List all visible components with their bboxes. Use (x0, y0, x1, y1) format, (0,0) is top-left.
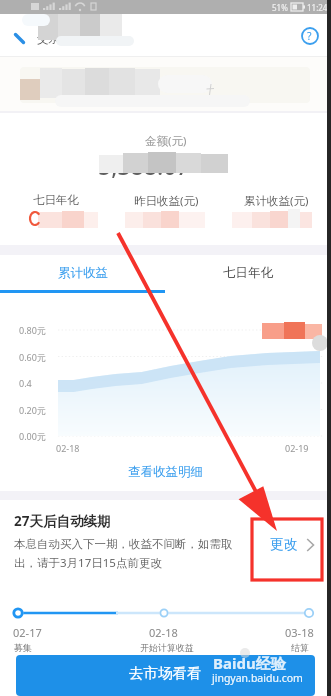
staticText: 累计收益 (58, 265, 108, 281)
button[interactable]: 累计收益 (0, 255, 165, 291)
staticText: 七日年化 (33, 193, 79, 207)
staticText: 11:24 (307, 2, 328, 13)
staticText: 27天后自动续期 (14, 512, 111, 530)
staticText: 5,388.07 (98, 150, 190, 181)
staticText: 去市场看看 (129, 664, 202, 682)
staticText: 本息自动买入下一期，收益不间断，如需取 出，请于3月17日15点前更改 (14, 537, 233, 571)
staticText: 查看收益明细 (128, 464, 203, 480)
staticText: 累计收益(元) (244, 193, 309, 209)
button[interactable]: 去市场看看 (16, 655, 315, 696)
staticText: 0.20元 (19, 404, 46, 416)
button[interactable]: Help (288, 14, 331, 57)
staticText: 昨日收益(元) (134, 193, 199, 209)
button[interactable]: 更改 (270, 536, 315, 554)
staticText: ? (307, 29, 312, 43)
staticText: 02-17 (13, 625, 42, 640)
staticText: 51% (272, 2, 288, 13)
button[interactable]: 查看收益明细 (0, 452, 331, 491)
staticText: 更改 (270, 536, 298, 554)
staticText: 七日年化 (223, 265, 273, 281)
staticText: 0.00元 (19, 430, 46, 442)
staticText: 父亲 (37, 32, 60, 46)
staticText: 0.80元 (19, 324, 46, 336)
staticText: 02-19 (285, 442, 309, 454)
staticText: 0.60元 (19, 351, 46, 363)
staticText: jingyan.baidu.com (212, 671, 303, 685)
staticText: 0.4 (19, 377, 32, 389)
button[interactable]: Back (0, 14, 38, 57)
staticText: 募集 (14, 642, 32, 653)
staticText: Baidu经验 (213, 653, 286, 673)
staticText: 结算 (291, 642, 309, 653)
staticText: 金额(元) (145, 133, 187, 149)
staticText: 03-18 (285, 625, 314, 640)
staticText: 开始计算收益 (140, 642, 194, 653)
staticText: 02-18 (56, 442, 80, 454)
button[interactable]: 七日年化 (165, 255, 331, 291)
staticText: 02-18 (149, 625, 178, 640)
